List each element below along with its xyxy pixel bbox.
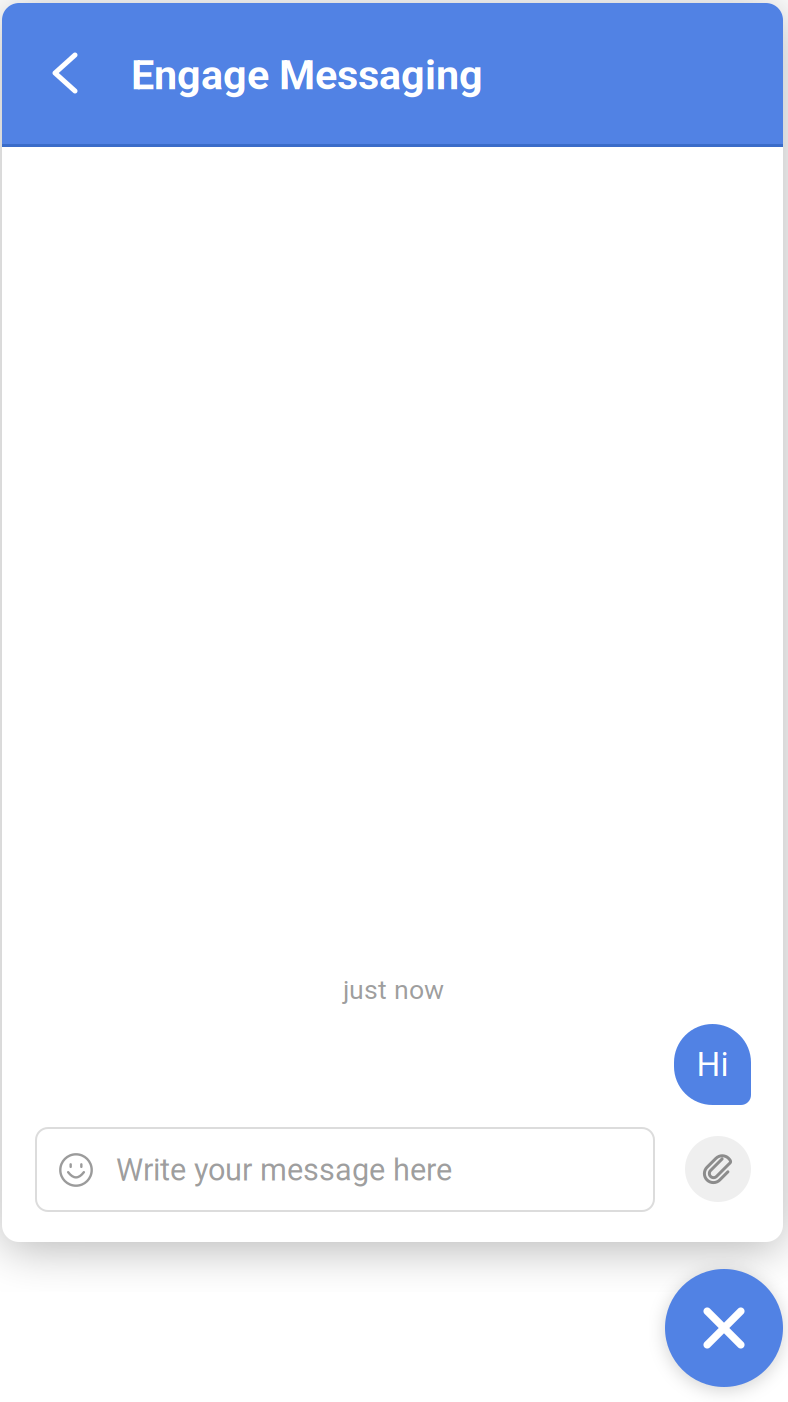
staticText: Hi (696, 1045, 728, 1084)
button[interactable]: Write your message here (35, 1127, 655, 1212)
button[interactable]: Attach a file (685, 1136, 751, 1202)
staticText: just now (343, 974, 444, 1006)
button[interactable]: Back (36, 41, 94, 105)
button[interactable]: Close chat (665, 1269, 783, 1387)
staticText: Write your message here (116, 1152, 452, 1188)
staticText: Engage Messaging (131, 51, 483, 99)
